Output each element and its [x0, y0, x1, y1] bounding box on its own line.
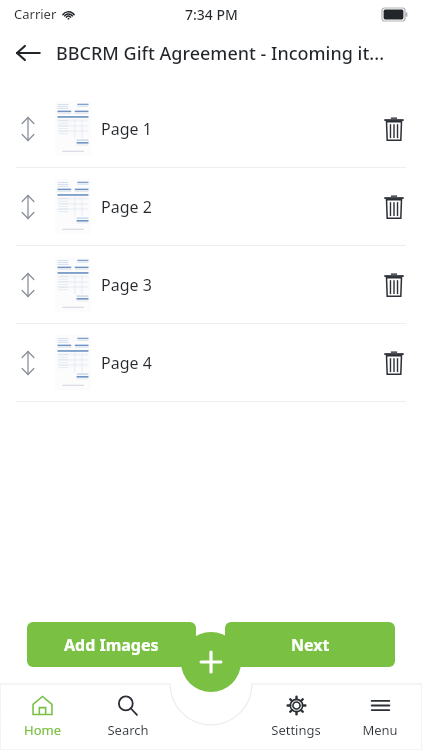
button[interactable]: Reorder — [0, 168, 55, 245]
staticText: Next — [291, 634, 330, 656]
button[interactable]: Reorder — [0, 246, 55, 323]
staticText: Page 3 — [101, 274, 152, 296]
staticText: Search — [107, 721, 149, 739]
staticText: Add Images — [64, 634, 159, 656]
button[interactable]: Delete — [366, 168, 422, 245]
button[interactable]: Reorder — [0, 90, 422, 167]
staticText: Home — [24, 721, 61, 739]
button[interactable]: Menu — [338, 684, 422, 750]
staticText: Page 2 — [101, 196, 152, 218]
button[interactable]: Add Images — [27, 622, 196, 667]
button[interactable]: Delete — [366, 90, 422, 167]
button[interactable]: Home — [0, 684, 85, 750]
staticText: Page 4 — [101, 352, 152, 374]
staticText: Page 1 — [101, 118, 152, 140]
button[interactable]: Next — [225, 622, 395, 667]
button[interactable]: Reorder — [0, 324, 55, 401]
button[interactable]: Reorder — [0, 90, 55, 167]
staticText: Settings — [271, 721, 321, 739]
staticText: BBCRM Gift Agreement - Incoming it... — [56, 41, 385, 66]
button[interactable]: Reorder — [0, 168, 422, 245]
button[interactable]: Back — [0, 28, 56, 78]
button[interactable]: Delete — [366, 246, 422, 323]
staticText: Carrier — [14, 5, 57, 23]
button[interactable]: Reorder — [0, 246, 422, 323]
button[interactable]: Search — [85, 684, 170, 750]
button[interactable]: Settings — [254, 684, 338, 750]
staticText: Menu — [362, 721, 398, 739]
button[interactable]: Delete — [366, 324, 422, 401]
button[interactable]: Reorder — [0, 324, 422, 401]
staticText: 7:34 PM — [185, 5, 238, 24]
button[interactable]: Add — [181, 632, 241, 692]
